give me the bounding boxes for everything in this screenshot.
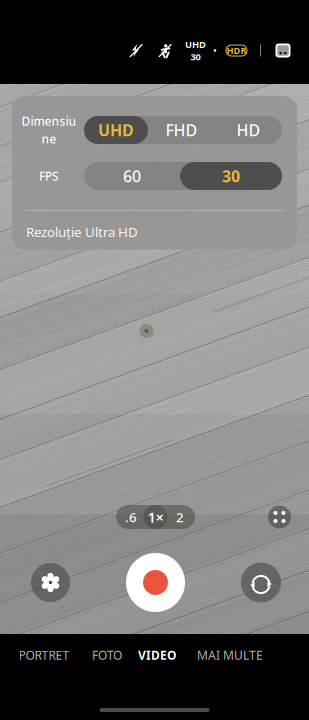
button[interactable]: MAI MULTE: [194, 639, 266, 671]
button[interactable]: Beauty filter: [31, 563, 70, 602]
staticText: ne: [41, 131, 56, 147]
button[interactable]: FOTO: [92, 639, 122, 671]
button[interactable]: HDR: [224, 37, 249, 63]
staticText: VIDEO: [138, 647, 176, 663]
button[interactable]: Switch camera: [241, 562, 281, 602]
button[interactable]: UHD: [184, 37, 206, 63]
staticText: 1×: [147, 507, 163, 527]
button[interactable]: VIDEO: [136, 639, 178, 671]
button[interactable]: More settings: [272, 37, 293, 63]
button[interactable]: UHD: [84, 116, 148, 144]
button[interactable]: Filters: [268, 505, 291, 528]
staticText: 2: [176, 508, 184, 526]
staticText: HDR: [226, 44, 246, 57]
button[interactable]: 30: [180, 162, 282, 190]
staticText: 30: [222, 165, 240, 187]
button[interactable]: 60: [84, 162, 180, 190]
button[interactable]: HD: [215, 116, 282, 144]
staticText: Dimensiu: [21, 113, 76, 129]
staticText: UHD: [185, 38, 206, 50]
staticText: 60: [123, 165, 141, 187]
button[interactable]: .6: [118, 505, 143, 529]
button[interactable]: Flash off: [123, 37, 149, 63]
staticText: .6: [125, 508, 137, 526]
staticText: HD: [236, 119, 260, 141]
staticText: 30: [190, 50, 200, 63]
staticText: FOTO: [92, 647, 122, 663]
staticText: UHD: [98, 119, 134, 141]
button[interactable]: Motion tracking off: [152, 37, 178, 63]
button[interactable]: FHD: [148, 116, 215, 144]
button[interactable]: PORTRET: [14, 639, 74, 671]
staticText: FHD: [165, 119, 197, 141]
button[interactable]: Record: [126, 553, 185, 612]
staticText: FPS: [39, 168, 59, 184]
button[interactable]: 2: [167, 505, 192, 529]
staticText: MAI MULTE: [197, 647, 263, 663]
button[interactable]: 1×: [143, 505, 167, 529]
staticText: Rezoluție Ultra HD: [26, 223, 138, 241]
staticText: PORTRET: [18, 647, 69, 663]
